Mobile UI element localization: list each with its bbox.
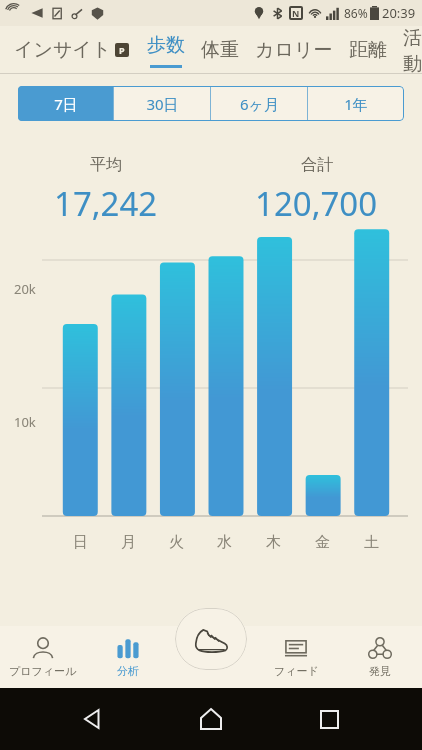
staticText: 木 [266, 533, 281, 552]
button[interactable]: 分析 [85, 626, 170, 688]
button[interactable]: フィード [254, 626, 338, 688]
staticText: N [292, 7, 300, 19]
button[interactable]: 距離 [349, 38, 387, 62]
staticText: 120,700 [255, 181, 378, 226]
staticText: 17,242 [54, 181, 158, 226]
button[interactable]: Recents [305, 695, 353, 743]
staticText: 日 [73, 533, 88, 552]
staticText: 水 [217, 533, 232, 552]
button[interactable]: Start activity [175, 608, 247, 670]
staticText: 20:39 [382, 4, 416, 22]
staticText: 金 [315, 533, 330, 552]
staticText: 平均 [90, 155, 122, 175]
staticText: 合計 [301, 155, 333, 175]
staticText: 30日 [146, 94, 179, 114]
button[interactable]: Home [187, 695, 235, 743]
button[interactable]: 歩数 [147, 33, 185, 68]
staticText: フィード [274, 664, 319, 678]
button[interactable]: インサイト [12, 38, 131, 62]
staticText: P [119, 44, 125, 56]
button[interactable]: 1年 [308, 86, 404, 121]
staticText: 10k [14, 413, 36, 431]
staticText: 20k [14, 280, 36, 298]
staticText: 発見 [369, 664, 391, 678]
staticText: 86% [344, 5, 368, 21]
button[interactable]: Back [70, 695, 118, 743]
staticText: 1年 [344, 94, 368, 114]
button[interactable]: プロフィール [0, 626, 85, 688]
button[interactable]: 6ヶ月 [211, 86, 307, 121]
staticText: 7日 [54, 94, 78, 114]
button[interactable]: 活動時間 [403, 26, 422, 74]
staticText: 月 [121, 533, 136, 552]
staticText: インサイト [14, 38, 112, 62]
staticText: 土 [364, 533, 379, 552]
button[interactable]: 発見 [338, 626, 422, 688]
button[interactable]: 体重 [201, 38, 239, 62]
staticText: 6ヶ月 [240, 94, 279, 114]
button[interactable]: カロリー [255, 38, 333, 62]
staticText: プロフィール [9, 664, 77, 678]
button[interactable]: 7日 [18, 86, 113, 121]
button[interactable]: 30日 [114, 86, 210, 121]
staticText: 火 [169, 533, 184, 552]
staticText: 歩数 [147, 33, 185, 57]
staticText: 分析 [117, 664, 139, 678]
